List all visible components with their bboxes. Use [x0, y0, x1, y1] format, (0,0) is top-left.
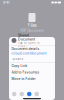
button[interactable]: Shared Document — [9, 36, 55, 45]
staticText: Document details — [11, 47, 39, 51]
button[interactable]: Add to Favourites — [9, 69, 55, 75]
staticText: Files — [27, 23, 36, 28]
button[interactable]: Share target — [27, 92, 31, 96]
staticText: 9:41 — [3, 0, 10, 5]
button[interactable]: Share target — [19, 92, 24, 96]
staticText: Copy Link — [11, 64, 27, 68]
staticText: Add to Favourites — [11, 70, 39, 74]
staticText: PDF Document — [20, 29, 43, 32]
staticText: Move to Folder — [11, 77, 35, 81]
button[interactable]: Share target — [12, 92, 16, 96]
button[interactable]: Move to Folder — [9, 75, 55, 82]
button[interactable]: Share target — [34, 92, 39, 96]
staticText: Tap to open in Files — [18, 41, 40, 48]
staticText: Shared Document — [18, 33, 35, 41]
staticText: Updated — [11, 57, 23, 61]
staticText: icloud.com/document — [11, 51, 46, 55]
button[interactable]: Copy Link — [9, 62, 55, 69]
